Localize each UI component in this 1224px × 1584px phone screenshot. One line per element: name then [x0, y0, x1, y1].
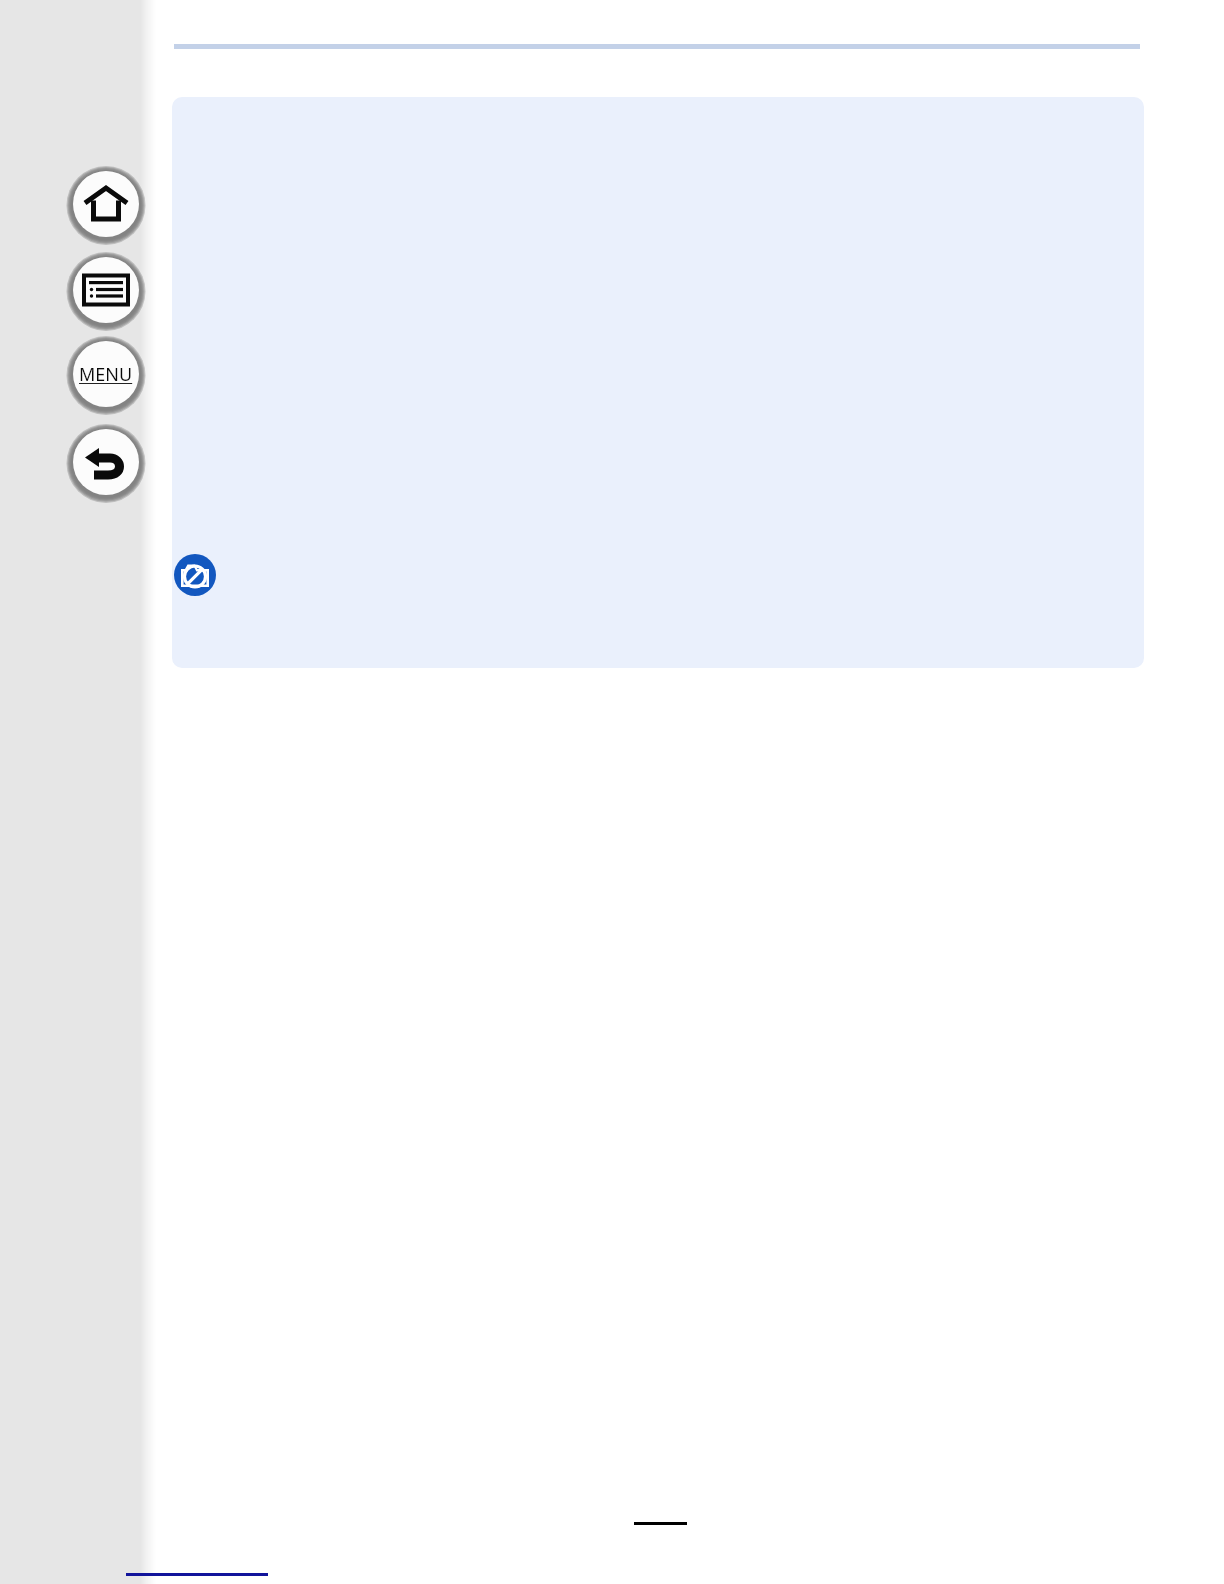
button[interactable]: No image available [172, 97, 1144, 668]
staticText: MENU [79, 362, 133, 387]
button[interactable]: Back [71, 427, 141, 497]
button[interactable]: Menu [71, 339, 141, 409]
button[interactable]: No image available [174, 554, 216, 596]
button[interactable]: Home [71, 169, 141, 239]
button[interactable]: Contents [71, 255, 141, 325]
